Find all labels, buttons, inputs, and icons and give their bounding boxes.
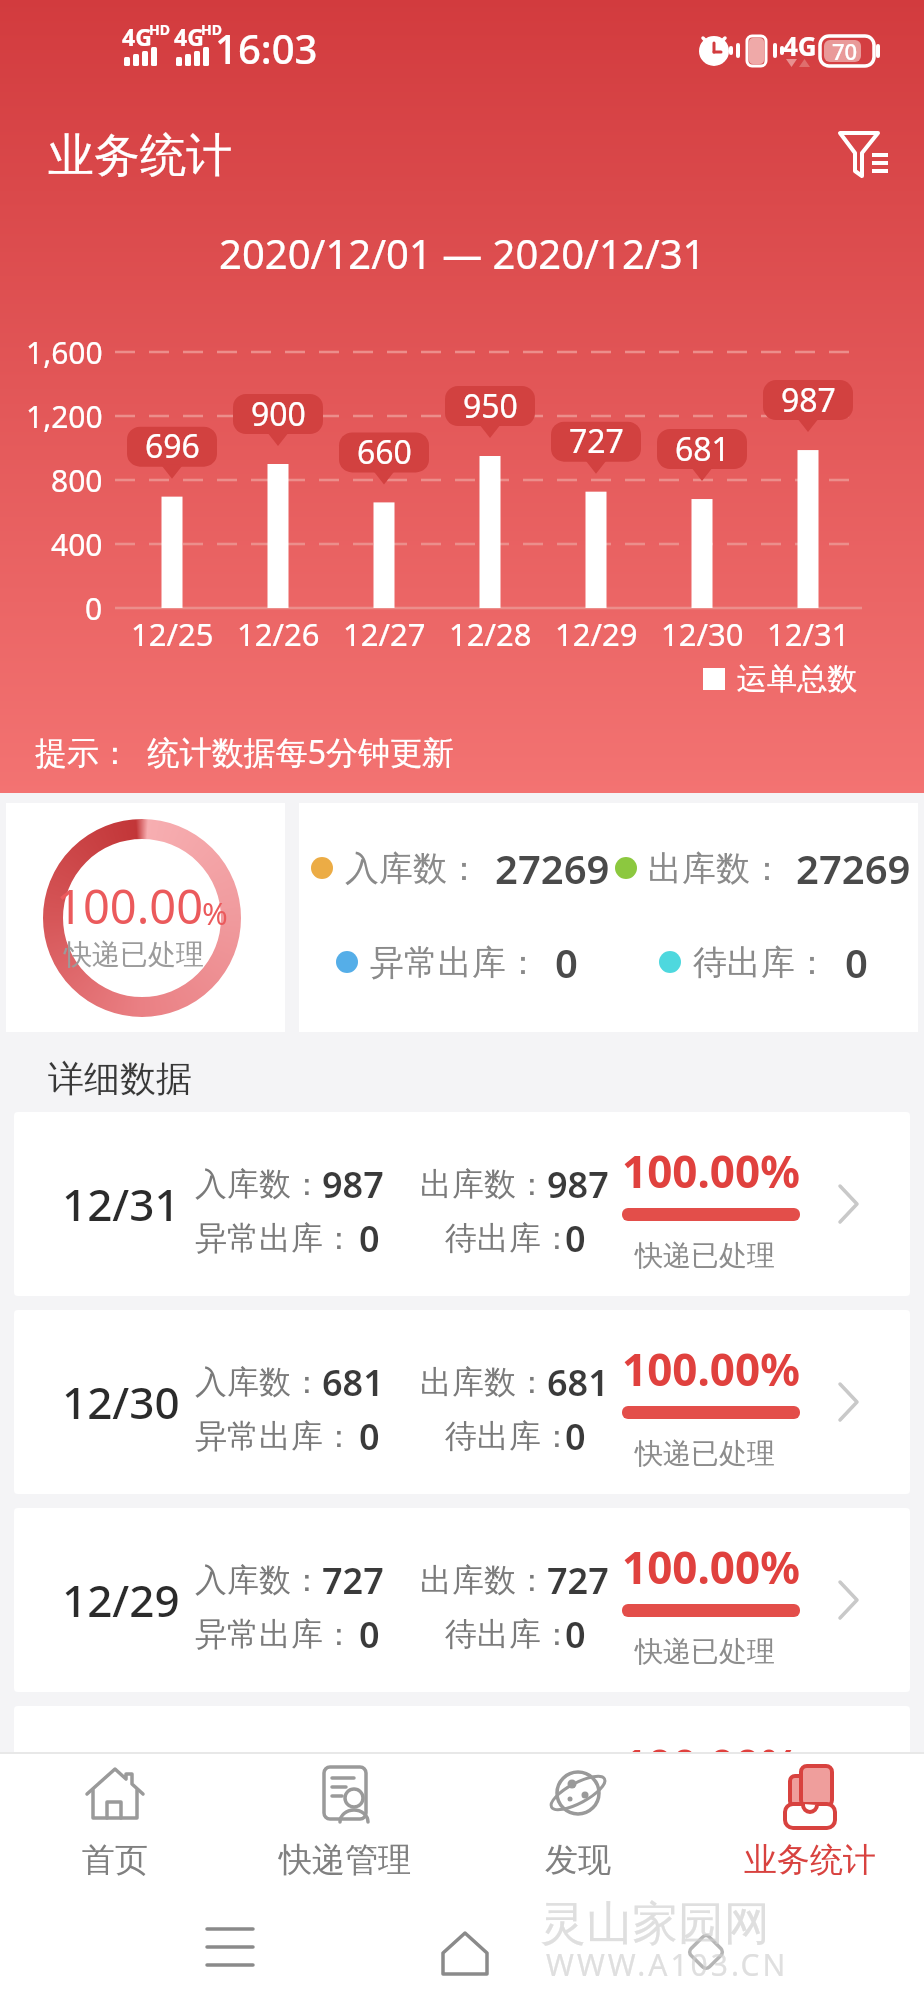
staticText: 业务统计 [48, 127, 232, 185]
staticText: 27269 [796, 841, 911, 895]
staticText: 0 [845, 935, 868, 989]
staticText: 待出库： [445, 1218, 573, 1258]
staticText: 27269 [495, 841, 610, 895]
staticText: 异常出库： [195, 1614, 355, 1654]
staticText: 660 [357, 430, 412, 474]
staticText: 4G [174, 21, 204, 52]
staticText: HD [201, 20, 222, 39]
staticText: 12/30 [661, 613, 744, 655]
staticText: 681 [322, 1358, 384, 1407]
staticText: HD [149, 20, 170, 39]
staticText: 12/29 [62, 1570, 180, 1630]
staticText: 987 [547, 1160, 609, 1209]
staticText: 727 [547, 1556, 609, 1605]
staticText: 950 [463, 384, 518, 428]
staticText: 0 [565, 1214, 586, 1263]
staticText: 400 [51, 524, 103, 565]
staticText: 12/27 [343, 613, 426, 655]
staticText: 696 [145, 424, 200, 468]
staticText: 12/30 [62, 1372, 180, 1432]
staticText: 12/25 [131, 613, 214, 655]
staticText: 70 [832, 36, 858, 66]
staticText: 异常出库： [195, 1218, 355, 1258]
staticText: 快递已处理 [635, 1634, 775, 1669]
staticText: 12/31 [62, 1174, 180, 1234]
staticText: 待出库： [445, 1614, 573, 1654]
staticText: 灵山家园网 [540, 1895, 770, 1953]
staticText: 待出库： [445, 1812, 573, 1852]
staticText: 出库数： [420, 1362, 548, 1402]
staticText: 4G [783, 28, 817, 63]
button[interactable]: 12/31 [14, 1112, 910, 1296]
staticText: 入库数： [345, 847, 481, 890]
staticText: 4G [122, 21, 152, 52]
staticText: 100.00 [56, 874, 204, 938]
staticText: 1,600 [26, 332, 103, 373]
staticText: 入库数： [195, 1758, 323, 1798]
staticText: 12/29 [555, 613, 638, 655]
staticText: 快递已处理 [635, 1238, 775, 1273]
staticText: 待出库： [445, 1416, 573, 1456]
staticText: 100.00% [622, 1735, 800, 1795]
staticText: 快递已处理 [635, 1832, 775, 1867]
staticText: % [202, 892, 228, 934]
staticText: 首页 [82, 1839, 148, 1881]
staticText: 2020/12/01 — 2020/12/31 [219, 226, 706, 280]
staticText: 0 [565, 1412, 586, 1461]
staticText: 发现 [545, 1839, 611, 1881]
staticText: 0 [565, 1808, 586, 1857]
staticText: 16:03 [215, 21, 318, 75]
button[interactable]: 业务统计 [715, 1754, 905, 1886]
button[interactable]: 首页 [20, 1754, 210, 1886]
staticText: 异常出库： [195, 1812, 355, 1852]
staticText: 0 [555, 935, 578, 989]
staticText: 运单总数 [737, 660, 857, 698]
staticText: 出库数： [648, 847, 784, 890]
staticText: 727 [569, 419, 624, 463]
staticText: 待出库： [693, 941, 829, 984]
staticText: 0 [359, 1808, 380, 1857]
staticText: 681 [547, 1358, 609, 1407]
staticText: 950 [547, 1754, 609, 1803]
staticText: 100.00% [622, 1141, 800, 1201]
button[interactable]: 快递管理 [250, 1754, 440, 1886]
staticText: 业务统计 [744, 1839, 876, 1881]
staticText: 0 [85, 588, 103, 629]
staticText: WWW.A103.CN [546, 1944, 789, 1985]
staticText: 681 [675, 427, 730, 471]
button[interactable]: 入库数： [299, 803, 918, 1032]
staticText: 快递已处理 [64, 937, 204, 972]
button[interactable]: 12/28 [14, 1706, 910, 1890]
staticText: 快递已处理 [635, 1436, 775, 1471]
staticText: 987 [781, 378, 836, 422]
staticText: 入库数： [195, 1560, 323, 1600]
button[interactable]: 100.00 [6, 803, 285, 1032]
staticText: 100.00% [622, 1339, 800, 1399]
staticText: 快递管理 [279, 1839, 411, 1881]
button[interactable]: 12/29 [14, 1508, 910, 1692]
staticText: 0 [359, 1214, 380, 1263]
button[interactable]: 发现 [483, 1754, 673, 1886]
button[interactable]: 12/30 [14, 1310, 910, 1494]
staticText: 800 [51, 460, 103, 501]
staticText: 出库数： [420, 1560, 548, 1600]
staticText: 727 [322, 1556, 384, 1605]
staticText: 入库数： [195, 1164, 323, 1204]
staticText: 异常出库： [195, 1416, 355, 1456]
staticText: 0 [565, 1610, 586, 1659]
staticText: 入库数： [195, 1362, 323, 1402]
staticText: 950 [322, 1754, 384, 1803]
staticText: 详细数据 [48, 1056, 192, 1101]
staticText: 异常出库： [370, 941, 540, 984]
staticText: 提示： 统计数据每5分钟更新 [35, 730, 454, 774]
staticText: 12/26 [237, 613, 320, 655]
button[interactable] [828, 124, 898, 190]
staticText: 900 [251, 392, 306, 436]
staticText: 出库数： [420, 1164, 548, 1204]
staticText: 1,200 [26, 396, 103, 437]
staticText: 12/28 [62, 1768, 180, 1828]
staticText: 12/28 [449, 613, 532, 655]
staticText: 100.00% [622, 1537, 800, 1597]
staticText: 987 [322, 1160, 384, 1209]
